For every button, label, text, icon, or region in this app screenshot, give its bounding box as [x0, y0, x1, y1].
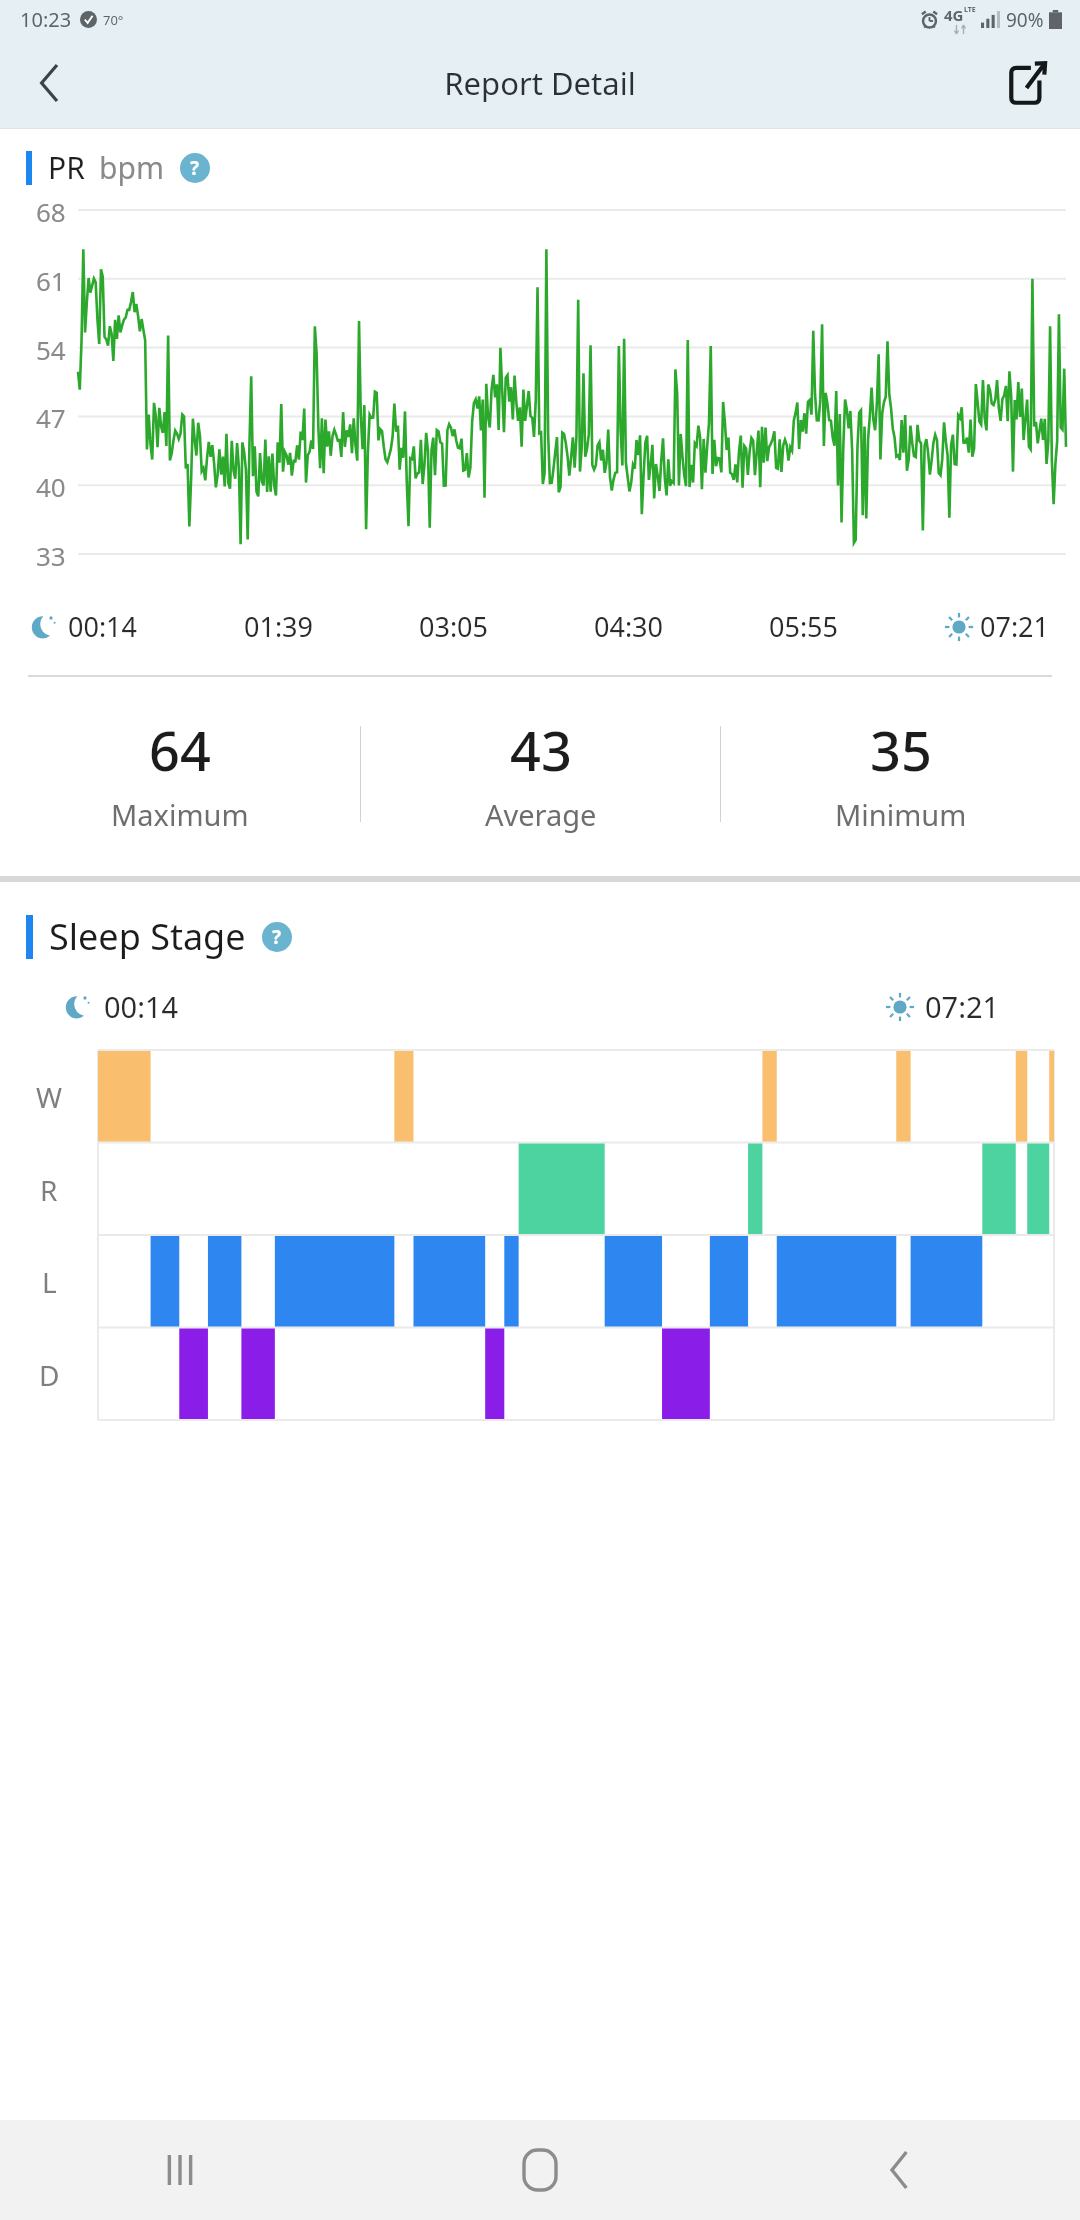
button[interactable]: 43 [361, 713, 720, 834]
button[interactable]: PR [26, 147, 1080, 188]
staticText: 05:55 [769, 608, 839, 645]
staticText: Average [485, 795, 597, 834]
staticText: 35 [870, 713, 932, 787]
staticText: Maximum [111, 795, 249, 834]
staticText: D [39, 1356, 60, 1394]
button[interactable]: 64 [0, 713, 360, 834]
staticText: L [42, 1263, 57, 1301]
staticText: 03:05 [419, 608, 489, 645]
button[interactable]: Share [998, 53, 1058, 113]
staticText: W [36, 1078, 63, 1116]
staticText: 01:39 [244, 608, 314, 645]
staticText: 61 [36, 263, 66, 298]
staticText: 00:14 [68, 608, 138, 645]
staticText: Report Detail [444, 62, 636, 104]
button[interactable]: Back [22, 55, 78, 111]
staticText: 07:21 [980, 608, 1050, 645]
button[interactable]: Help [180, 153, 210, 183]
button[interactable]: Recents [0, 2120, 360, 2220]
staticText: ? [190, 155, 200, 181]
staticText: PR [48, 147, 85, 188]
staticText: 90% [1006, 7, 1044, 33]
button[interactable]: Home [360, 2120, 720, 2220]
staticText: LTE [964, 5, 976, 15]
staticText: R [40, 1171, 58, 1209]
button[interactable]: 35 [721, 713, 1080, 834]
staticText: Sleep Stage [49, 912, 246, 961]
staticText: ? [272, 924, 282, 950]
staticText: 00:14 [104, 987, 179, 1026]
staticText: 54 [36, 332, 66, 367]
staticText: 43 [510, 713, 572, 787]
staticText: 4G [944, 5, 964, 25]
staticText: 04:30 [594, 608, 664, 645]
button[interactable]: Back [720, 2120, 1080, 2220]
staticText: 47 [36, 400, 66, 435]
button[interactable]: Help [262, 922, 292, 952]
staticText: 40 [36, 469, 66, 504]
staticText: 10:23 [20, 6, 72, 33]
button[interactable]: Sleep Stage [26, 912, 1080, 961]
staticText: 68 [36, 194, 66, 229]
staticText: 33 [36, 538, 66, 573]
staticText: 07:21 [925, 987, 1000, 1026]
staticText: 70° [103, 11, 124, 29]
staticText: bpm [99, 147, 164, 188]
staticText: Minimum [835, 795, 967, 834]
staticText: 64 [149, 713, 211, 787]
